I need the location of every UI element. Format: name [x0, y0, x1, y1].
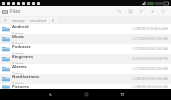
- button[interactable]: Pictures: [0, 84, 171, 89]
- button[interactable]: Notifications: [0, 74, 171, 84]
- staticText: 0 items: [12, 71, 24, 74]
- staticText: Music: [12, 34, 25, 40]
- staticText: 11/07/2014 03:52:40 PM: [131, 57, 168, 61]
- staticText: 0 items: [12, 61, 24, 64]
- staticText: Notifications: [12, 74, 40, 80]
- button[interactable]: Root storage: [2, 17, 9, 23]
- staticText: Pictures: [12, 84, 29, 89]
- button[interactable]: Alarms: [0, 64, 171, 74]
- staticText: 11/08/2014 10:48:14 AM: [131, 27, 168, 31]
- staticText: 0 items: [12, 81, 24, 84]
- staticText: Ringtones: [12, 54, 34, 60]
- button[interactable]: Ringtones: [0, 54, 171, 64]
- button[interactable]: Recent apps: [115, 89, 129, 100]
- staticText: 0 items: [12, 41, 24, 44]
- button[interactable]: emulated: [28, 17, 49, 23]
- button[interactable]: storage: [10, 17, 27, 23]
- button[interactable]: Refresh: [158, 6, 169, 16]
- button[interactable]: Sort: [136, 6, 147, 16]
- staticText: 11/08/2014 09:14:26 AM: [131, 77, 168, 81]
- button[interactable]: Music: [0, 34, 171, 44]
- button[interactable]: Back: [43, 89, 57, 100]
- staticText: 11/12/2014 08:21:03 AM: [131, 67, 168, 71]
- button[interactable]: Search: [114, 6, 125, 16]
- staticText: 11/12/2014 08:21:02 AM: [131, 37, 168, 41]
- staticText: 0 items: [12, 31, 24, 34]
- staticText: storage: [12, 18, 25, 23]
- staticText: 0: [52, 18, 55, 23]
- staticText: Alarms: [12, 64, 27, 70]
- staticText: 11/08/2014 09:02:55 AM: [131, 85, 168, 89]
- staticText: emulated: [30, 18, 47, 23]
- staticText: Files: [10, 8, 21, 15]
- staticText: 0 items: [12, 51, 24, 54]
- button[interactable]: Add: [147, 6, 158, 16]
- button[interactable]: Files: [2, 8, 21, 15]
- staticText: Android: [12, 24, 29, 30]
- staticText: Podcasts: [12, 44, 31, 50]
- staticText: 11/12/2014 08:21:02 AM: [131, 47, 168, 51]
- button[interactable]: 0: [50, 17, 57, 23]
- button[interactable]: Home: [79, 89, 93, 100]
- button[interactable]: Podcasts: [0, 44, 171, 54]
- button[interactable]: Android: [0, 24, 171, 34]
- button[interactable]: View mode: [125, 6, 136, 16]
